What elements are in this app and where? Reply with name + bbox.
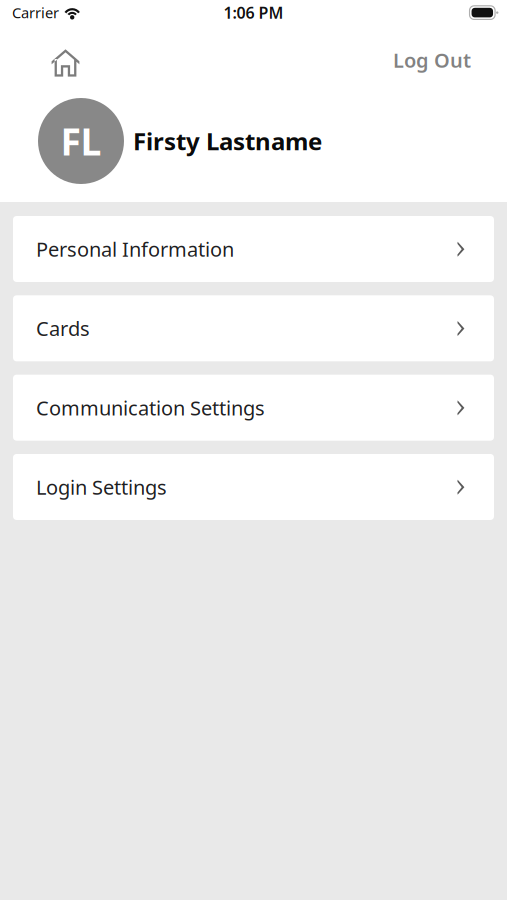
staticText: 1:06 PM — [223, 2, 283, 23]
button[interactable]: Personal Information — [13, 216, 494, 282]
staticText: Communication Settings — [36, 394, 265, 421]
button[interactable]: Log Out — [379, 39, 507, 85]
staticText: Log Out — [393, 47, 471, 73]
staticText: FL — [60, 116, 101, 166]
button[interactable]: Login Settings — [13, 454, 494, 520]
staticText: Carrier — [12, 3, 59, 22]
button[interactable]: Home — [0, 39, 94, 85]
staticText: Firsty Lastname — [133, 125, 322, 157]
staticText: Cards — [36, 315, 90, 342]
staticText: Personal Information — [36, 236, 234, 262]
button[interactable]: Cards — [13, 295, 494, 361]
button[interactable]: Communication Settings — [13, 375, 494, 441]
staticText: Login Settings — [36, 474, 167, 500]
